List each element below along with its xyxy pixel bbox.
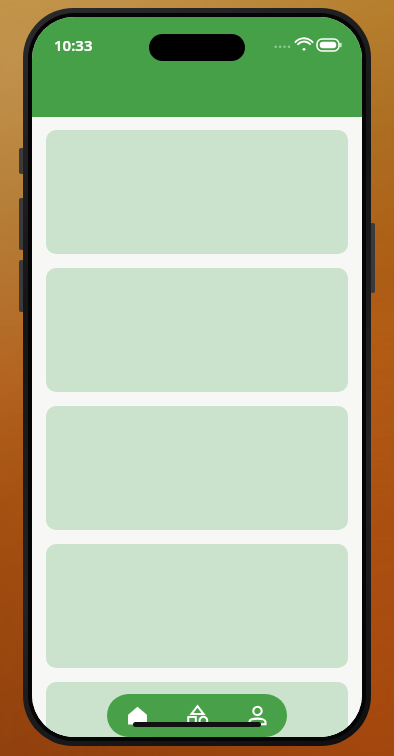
staticText: 10:33: [54, 35, 93, 55]
button[interactable]: Categories: [167, 694, 227, 737]
button[interactable]: Home: [107, 694, 167, 737]
button[interactable]: Profile: [227, 694, 287, 737]
